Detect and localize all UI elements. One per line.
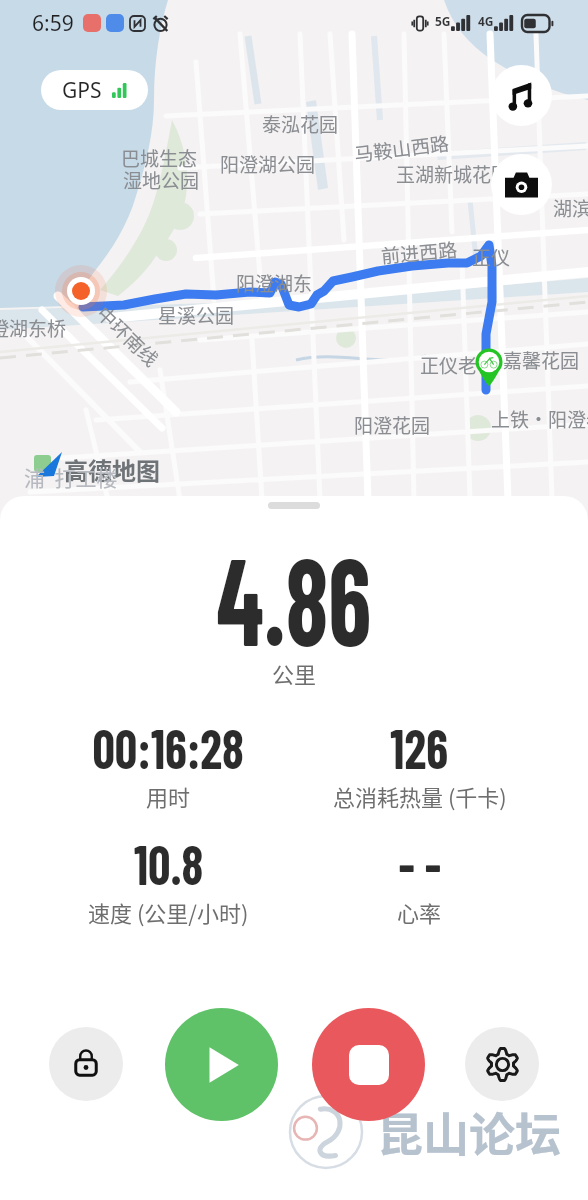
- staticText: 00:16:28: [92, 714, 245, 780]
- staticText: 玉湖新城花园: [396, 160, 511, 188]
- button[interactable]: GPS: [41, 70, 148, 110]
- staticText: 公里: [272, 657, 317, 689]
- staticText: 5G: [435, 13, 451, 29]
- staticText: 高德地图: [64, 452, 160, 487]
- staticText: 用时: [146, 780, 191, 812]
- staticText: 嘉馨花园: [503, 346, 580, 374]
- staticText: 星溪公园: [158, 301, 235, 329]
- staticText: 心率: [397, 896, 442, 928]
- staticText: 前进西路: [380, 235, 459, 269]
- staticText: 湿地公园: [123, 166, 200, 194]
- staticText: 澄湖东桥: [0, 314, 67, 342]
- staticText: 阳澄花园: [354, 411, 431, 439]
- staticText: 总消耗热量 (千卡): [333, 780, 507, 812]
- staticText: 126: [390, 714, 449, 780]
- staticText: 阳澄湖东: [236, 269, 313, 297]
- staticText: 浦 打工楼: [24, 462, 118, 492]
- button[interactable]: Lock screen: [49, 1027, 123, 1101]
- staticText: 10.8: [134, 830, 204, 896]
- staticText: 马鞍山西路: [353, 128, 451, 168]
- staticText: 巴城生态: [121, 144, 198, 172]
- staticText: 昆山论坛: [377, 1098, 561, 1165]
- button[interactable]: Settings: [465, 1027, 539, 1101]
- staticText: 泰泓花园: [262, 110, 339, 138]
- staticText: 阳澄湖公园: [220, 150, 316, 178]
- staticText: 正仪老: [420, 351, 478, 379]
- button[interactable]: Stop: [312, 1008, 425, 1121]
- staticText: - -: [398, 830, 442, 896]
- button[interactable]: Resume: [165, 1008, 278, 1121]
- staticText: 6:59: [32, 9, 74, 38]
- staticText: 4.86: [216, 524, 372, 670]
- staticText: GPS: [62, 76, 102, 105]
- staticText: 上铁·阳澄春: [491, 405, 588, 433]
- staticText: 正仪: [472, 243, 511, 271]
- button[interactable]: Camera: [491, 154, 552, 215]
- staticText: 湖滨: [553, 194, 588, 222]
- staticText: 速度 (公里/小时): [88, 896, 249, 928]
- button[interactable]: Music: [491, 65, 552, 126]
- staticText: 中环南线: [91, 299, 166, 373]
- staticText: 4G: [478, 13, 494, 29]
